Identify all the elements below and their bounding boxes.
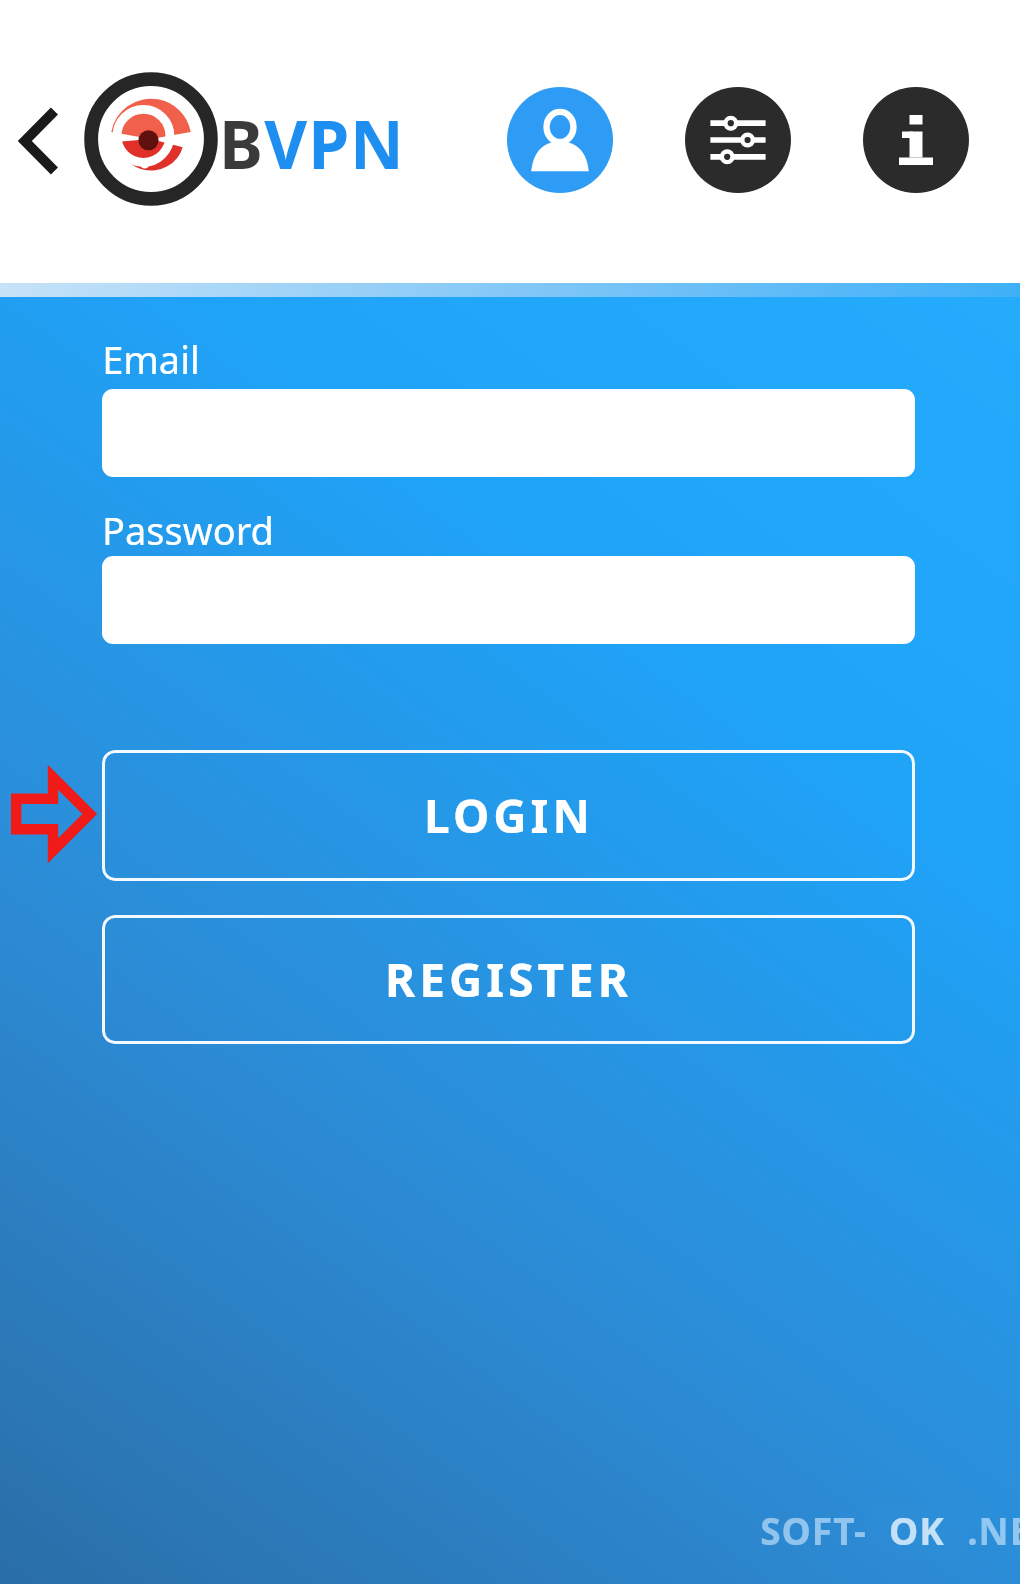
button[interactable]: REGISTER [102,915,915,1044]
button[interactable]: Information [863,87,969,193]
button[interactable]: Settings [685,87,791,193]
button[interactable]: Back [0,98,80,184]
button[interactable]: Account [507,87,613,193]
staticText: B [219,98,264,188]
staticText: VPN [264,98,405,188]
staticText: .NET [967,1505,1020,1555]
staticText: Password [102,504,274,556]
staticText: LOGIN [424,784,594,847]
staticText: REGISTER [385,948,632,1011]
staticText: OK [889,1505,945,1555]
staticText: Email [102,333,200,385]
button[interactable]: Password input [102,556,915,644]
button[interactable]: Email input [102,389,915,477]
button[interactable]: LOGIN [102,750,915,881]
staticText: SOFT- [760,1505,867,1555]
